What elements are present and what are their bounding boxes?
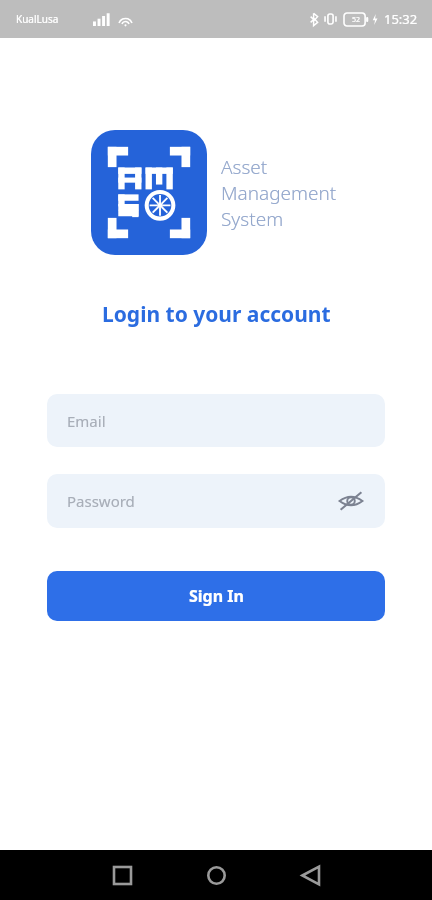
- staticText: Login to your account: [102, 300, 331, 329]
- staticText: Management: [221, 180, 337, 206]
- button[interactable]: Home: [188, 850, 244, 900]
- staticText: KualLusa: [16, 12, 59, 26]
- staticText: Asset: [221, 154, 268, 180]
- staticText: 15:32: [384, 10, 418, 28]
- staticText: Sign In: [189, 585, 244, 607]
- button[interactable]: Sign In: [47, 571, 385, 621]
- staticText: 52: [352, 15, 361, 25]
- button[interactable]: Back: [282, 850, 338, 900]
- button[interactable]: Email: [47, 394, 385, 447]
- button[interactable]: Recents: [94, 850, 150, 900]
- staticText: System: [221, 206, 284, 232]
- button[interactable]: Password: [47, 474, 385, 528]
- staticText: Email: [67, 411, 106, 431]
- button[interactable]: Show password: [335, 485, 367, 517]
- staticText: Password: [67, 491, 135, 511]
